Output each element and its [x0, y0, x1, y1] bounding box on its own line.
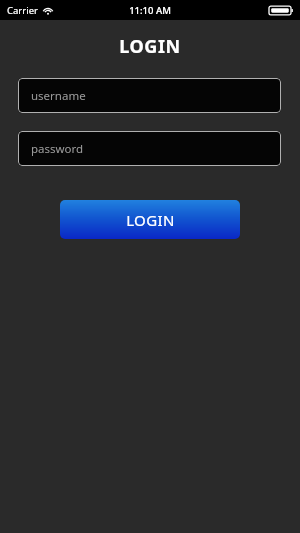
staticText: 11:10 AM — [129, 4, 171, 17]
button[interactable]: password — [18, 131, 281, 166]
staticText: LOGIN — [119, 34, 181, 59]
button[interactable]: username — [18, 78, 281, 113]
staticText: username — [31, 88, 86, 104]
staticText: LOGIN — [126, 210, 175, 230]
staticText: Carrier — [7, 4, 38, 17]
button[interactable]: LOGIN — [60, 200, 240, 239]
staticText: password — [31, 141, 84, 157]
